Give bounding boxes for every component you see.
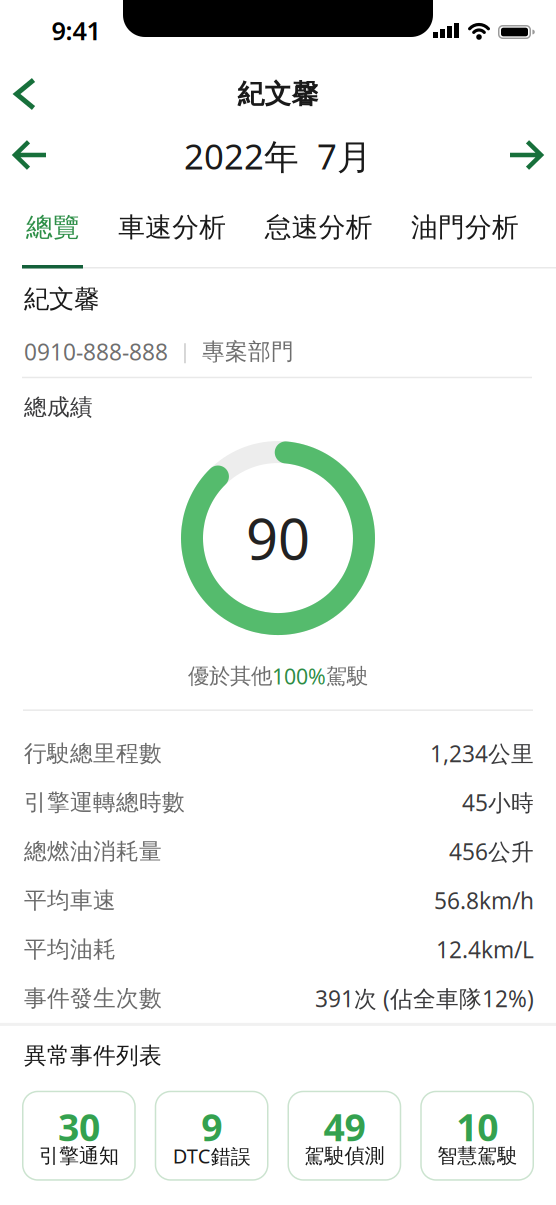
staticText: 90 [246, 501, 310, 575]
button[interactable]: 49 [287, 1091, 401, 1181]
button[interactable]: 車速分析 [118, 205, 226, 250]
staticText: 總成績 [24, 393, 93, 421]
button[interactable]: 9 [155, 1091, 269, 1181]
staticText: 異常事件列表 [24, 1042, 162, 1070]
staticText: 100% [272, 662, 326, 690]
staticText: 0910-888-888 [24, 337, 168, 367]
staticText: 45小時 [462, 787, 534, 817]
staticText: 駕駛 [326, 663, 368, 689]
button[interactable]: Previous month [8, 134, 52, 176]
staticText: 怠速分析 [265, 211, 373, 244]
staticText: 油門分析 [411, 211, 519, 244]
staticText: 平均油耗 [24, 935, 116, 963]
staticText: 優於其他 [188, 663, 272, 689]
staticText: 10 [456, 1102, 498, 1151]
staticText: 事件發生次數 [24, 984, 162, 1012]
staticText: 2022年 7月 [184, 133, 372, 179]
staticText: DTC錯誤 [173, 1142, 251, 1169]
staticText: 49 [323, 1102, 365, 1151]
staticText: 總燃油消耗量 [24, 837, 162, 865]
staticText: 平均車速 [24, 886, 116, 914]
staticText: 56.8km/h [434, 885, 534, 915]
staticText: 專案部門 [202, 338, 294, 365]
staticText: 行駛總里程數 [24, 739, 162, 767]
staticText: 12.4km/L [436, 934, 534, 964]
button[interactable]: 10 [420, 1091, 534, 1181]
button[interactable]: 怠速分析 [265, 205, 373, 250]
staticText: 391次 (佔全車隊12%) [315, 983, 534, 1013]
staticText: 9 [201, 1102, 222, 1151]
staticText: 1,234公里 [430, 738, 534, 768]
staticText: 智慧駕駛 [437, 1143, 517, 1168]
staticText: ｜ [175, 339, 195, 364]
staticText: 引擎通知 [39, 1143, 119, 1168]
staticText: 456公升 [449, 836, 534, 866]
staticText: 總覽 [26, 211, 80, 244]
staticText: 紀文馨 [24, 283, 99, 315]
staticText: 紀文馨 [237, 78, 318, 110]
staticText: 30 [58, 1102, 100, 1151]
button[interactable]: 30 [22, 1091, 136, 1181]
staticText: 9:41 [51, 14, 100, 47]
button[interactable]: Back [5, 69, 44, 118]
staticText: 引擎運轉總時數 [24, 788, 185, 816]
staticText: 駕駛偵測 [304, 1143, 384, 1168]
staticText: 車速分析 [118, 211, 226, 244]
button[interactable]: 油門分析 [411, 205, 519, 250]
button[interactable]: Next month [504, 134, 548, 176]
button[interactable]: 總覽 [26, 205, 80, 250]
